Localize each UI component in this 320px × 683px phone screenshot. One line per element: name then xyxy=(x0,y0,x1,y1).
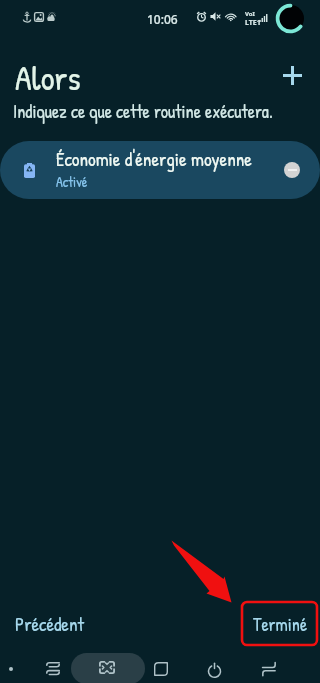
button[interactable]: Recents xyxy=(148,656,174,682)
button[interactable]: Screenshot xyxy=(71,653,145,683)
button[interactable]: Home xyxy=(2,660,20,678)
button[interactable]: Add xyxy=(274,57,310,93)
button[interactable]: Précédent xyxy=(4,606,96,642)
button[interactable]: Remove xyxy=(284,162,300,178)
staticText: VoI xyxy=(245,10,255,18)
staticText: Économie d'énergie moyenne xyxy=(56,146,252,172)
staticText: Précédent xyxy=(15,611,85,637)
staticText: 10:06 xyxy=(147,11,178,27)
button[interactable]: Terminé xyxy=(242,602,318,645)
button[interactable]: Power xyxy=(201,656,227,682)
staticText: Activé xyxy=(56,172,88,191)
button[interactable]: Économie d'énergie moyenne xyxy=(0,141,320,199)
button[interactable]: Split screen xyxy=(40,656,66,682)
staticText: LTE1 xyxy=(245,18,261,28)
staticText: Indiquez ce que cette routine exécutera. xyxy=(13,99,273,123)
staticText: Terminé xyxy=(253,612,308,636)
staticText: Alors xyxy=(15,55,81,101)
button[interactable]: Switch app xyxy=(256,656,282,682)
